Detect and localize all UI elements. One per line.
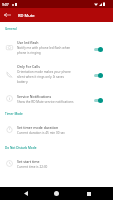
staticText: Notify me with phone led flash when phon… xyxy=(17,46,71,55)
button[interactable]: Toggle xyxy=(94,43,108,53)
staticText: Current time is 22:30 xyxy=(17,165,48,169)
button[interactable]: Home xyxy=(50,187,63,200)
staticText: Do Not Disturb Mode xyxy=(5,146,37,150)
staticText: General xyxy=(5,27,17,31)
button[interactable]: Only For Calls xyxy=(0,59,113,88)
staticText: Use led flash xyxy=(17,40,39,45)
button[interactable]: Navigate up xyxy=(0,8,14,22)
staticText: Set timer mode duration xyxy=(17,125,59,130)
button[interactable]: Set timer mode duration xyxy=(0,119,113,139)
staticText: Current duration is 45 min 00 sec xyxy=(17,131,66,135)
staticText: 9:07 xyxy=(2,2,9,7)
button[interactable]: Service Notifications xyxy=(0,88,113,108)
button[interactable]: Back xyxy=(19,187,32,200)
button[interactable]: Toggle xyxy=(94,69,108,79)
staticText: Set start time xyxy=(17,159,40,164)
staticText: Service Notifications xyxy=(17,94,52,99)
button[interactable]: Toggle xyxy=(94,94,108,104)
button[interactable]: Use led flash xyxy=(0,35,113,59)
staticText: Orientation mode makes your phone silent… xyxy=(17,70,71,84)
staticText: RD Mute xyxy=(18,13,35,18)
button[interactable]: Set start time xyxy=(0,153,113,173)
button[interactable]: Recent apps xyxy=(82,187,95,200)
staticText: Show the RD Mute service notifications xyxy=(17,100,74,104)
staticText: Timer Mode xyxy=(5,112,23,116)
staticText: Only For Calls xyxy=(17,64,40,69)
